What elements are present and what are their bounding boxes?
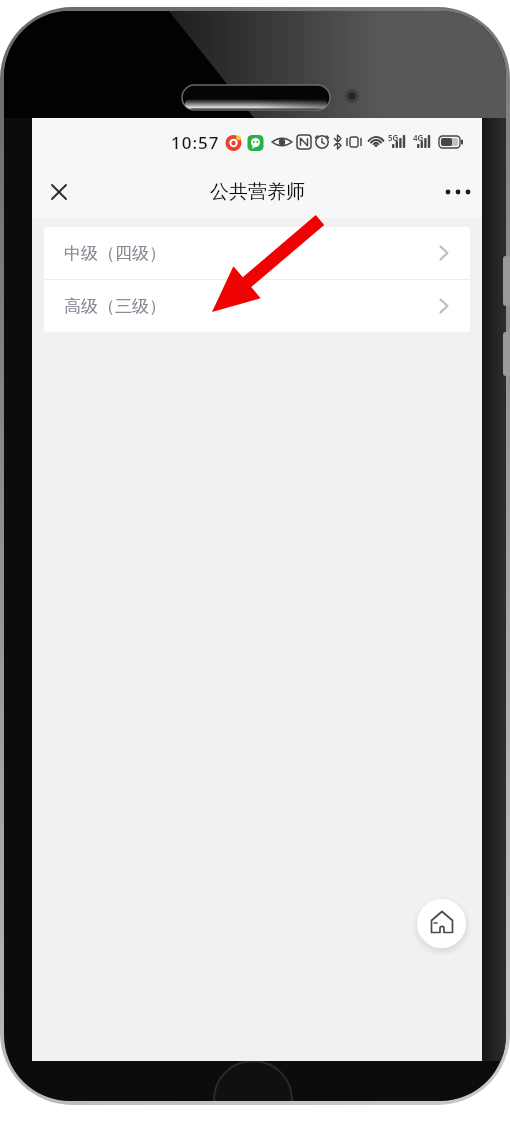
staticText: 10:57 — [171, 131, 220, 154]
button[interactable]: 中级（四级） — [44, 227, 470, 279]
staticText: 公共营养师 — [210, 180, 305, 204]
button[interactable]: 高级（三级） — [44, 280, 470, 332]
button[interactable] — [45, 178, 73, 206]
staticText: 中级（四级） — [64, 243, 166, 264]
button[interactable] — [417, 899, 466, 948]
button[interactable] — [442, 178, 474, 206]
staticText: 高级（三级） — [64, 296, 166, 317]
